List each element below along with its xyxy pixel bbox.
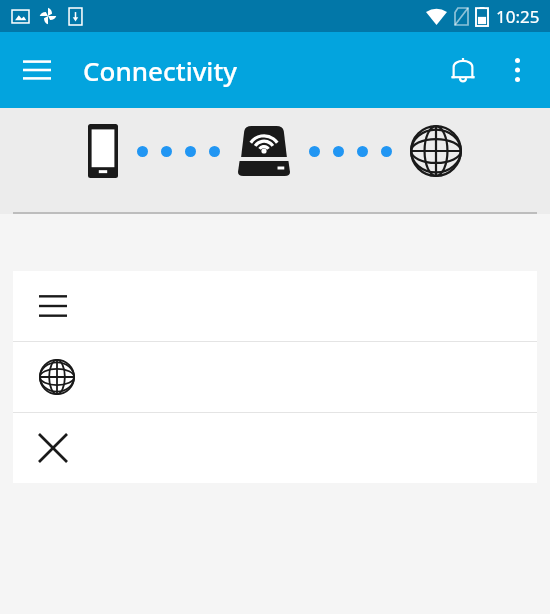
button[interactable]: Internet: [13, 342, 537, 412]
staticText: 10:25: [496, 5, 540, 28]
button[interactable]: Notifications: [436, 43, 490, 97]
button[interactable]: Disconnect: [13, 413, 537, 483]
staticText: Connectivity: [83, 53, 238, 88]
button[interactable]: Open navigation drawer: [10, 43, 64, 97]
button[interactable]: More options: [490, 43, 544, 97]
button[interactable]: Menu: [13, 271, 537, 341]
